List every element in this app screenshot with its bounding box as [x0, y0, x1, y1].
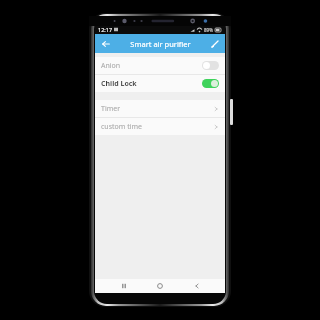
- button[interactable]: Home: [152, 279, 168, 293]
- staticText: Timer: [101, 104, 121, 114]
- staticText: 89%: [204, 27, 213, 33]
- button[interactable]: Edit: [208, 37, 221, 50]
- staticText: custom time: [101, 122, 142, 132]
- button[interactable]: Timer: [95, 100, 225, 117]
- button[interactable]: Anion: [95, 57, 225, 74]
- button[interactable]: custom time: [95, 118, 225, 135]
- button[interactable]: Back: [189, 279, 205, 293]
- staticText: Anion: [101, 61, 121, 71]
- button[interactable]: Child Lock: [95, 75, 225, 92]
- staticText: 12:17: [98, 26, 113, 33]
- button[interactable]: Recents: [116, 279, 132, 293]
- staticText: Smart air purifier: [130, 39, 191, 49]
- staticText: Child Lock: [101, 79, 137, 89]
- button[interactable]: Back: [99, 37, 112, 50]
